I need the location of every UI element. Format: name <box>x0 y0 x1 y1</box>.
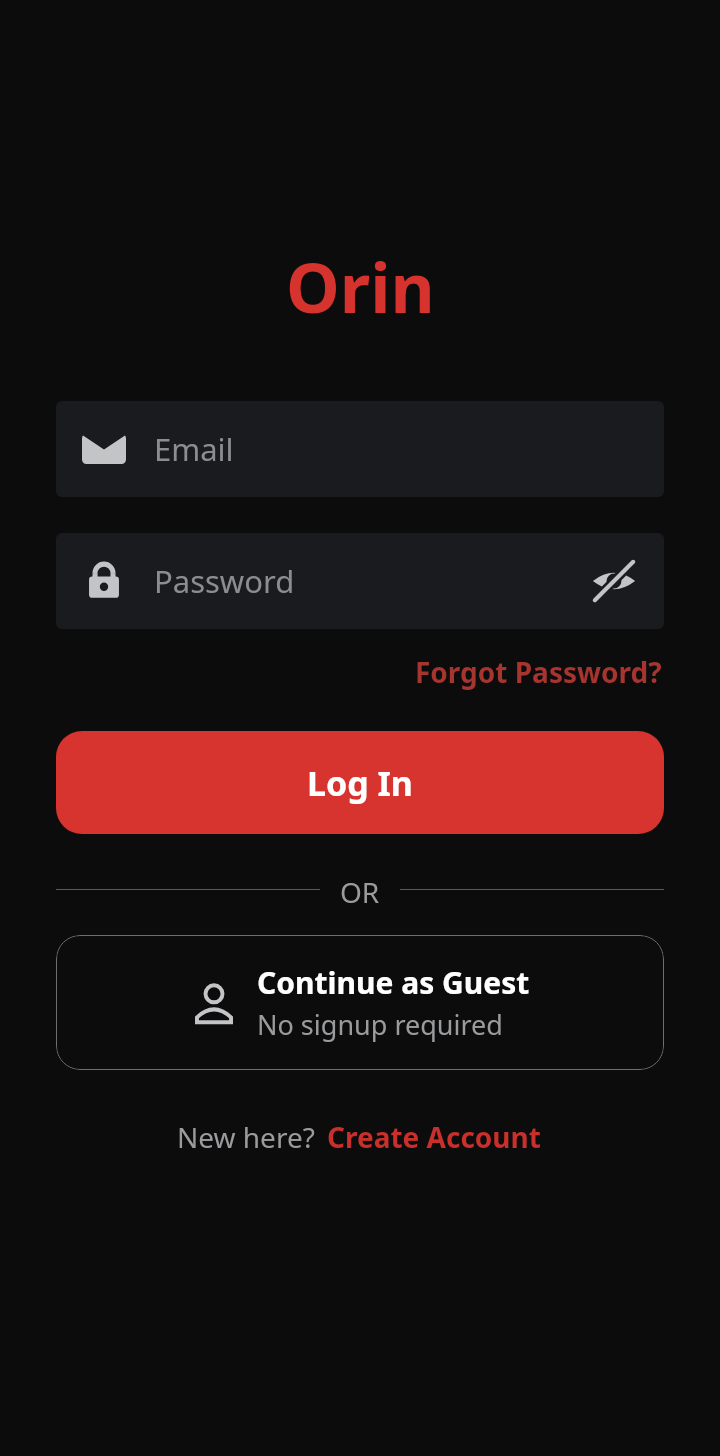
other: Show password <box>590 557 638 605</box>
other: Email <box>82 427 126 471</box>
staticText: No signup required <box>257 1006 503 1043</box>
staticText: Orin <box>286 240 435 333</box>
button[interactable]: Password <box>56 533 664 629</box>
staticText: Create Account <box>327 1118 541 1156</box>
staticText: Log In <box>307 760 413 806</box>
button[interactable]: Forgot Password? <box>413 647 664 697</box>
button[interactable]: Continue as Guest <box>56 935 664 1070</box>
button[interactable]: Create Account <box>325 1112 543 1162</box>
staticText: New here? <box>177 1118 315 1156</box>
other: Password <box>82 559 126 603</box>
staticText: Email <box>154 428 638 470</box>
staticText: OR <box>340 873 380 905</box>
staticText: Continue as Guest <box>257 962 530 1003</box>
staticText: Password <box>154 560 590 602</box>
button[interactable]: Log In <box>56 731 664 834</box>
staticText: Forgot Password? <box>415 653 662 691</box>
button[interactable]: Email <box>56 401 664 497</box>
